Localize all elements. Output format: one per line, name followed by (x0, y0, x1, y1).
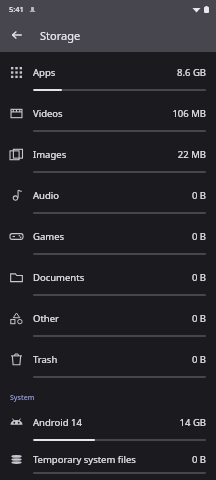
button[interactable]: Android 14 (0, 406, 216, 447)
button[interactable]: Apps (0, 56, 216, 97)
button[interactable]: Games (0, 220, 216, 261)
staticText: Games (33, 230, 191, 243)
staticText: 0 B (191, 189, 206, 202)
staticText: Trash (33, 353, 191, 366)
staticText: 0 B (191, 271, 206, 284)
button[interactable]: Temporary system files (0, 447, 216, 480)
button[interactable]: Other (0, 302, 216, 343)
staticText: 8.6 GB (177, 66, 206, 79)
staticText: 0 B (191, 353, 206, 366)
staticText: 0 B (191, 230, 206, 243)
staticText: Apps (33, 66, 177, 79)
button[interactable]: Videos (0, 97, 216, 138)
staticText: 14 GB (179, 416, 206, 429)
staticText: Other (33, 312, 191, 325)
button[interactable]: Audio (0, 179, 216, 220)
staticText: Videos (33, 107, 172, 120)
button[interactable]: Documents (0, 261, 216, 302)
button[interactable]: Images (0, 138, 216, 179)
staticText: Android 14 (33, 416, 179, 429)
staticText: 0 B (191, 453, 206, 466)
staticText: 22 MB (177, 148, 206, 161)
staticText: Audio (33, 189, 191, 202)
staticText: 106 MB (172, 107, 206, 120)
staticText: Documents (33, 271, 191, 284)
staticText: 0 B (191, 312, 206, 325)
staticText: Storage (40, 28, 81, 43)
staticText: Images (33, 148, 177, 161)
button[interactable]: Back (6, 24, 28, 46)
staticText: Temporary system files (33, 453, 191, 466)
button[interactable]: Trash (0, 343, 216, 384)
staticText: System (10, 393, 35, 403)
staticText: 5:41 (9, 4, 24, 14)
